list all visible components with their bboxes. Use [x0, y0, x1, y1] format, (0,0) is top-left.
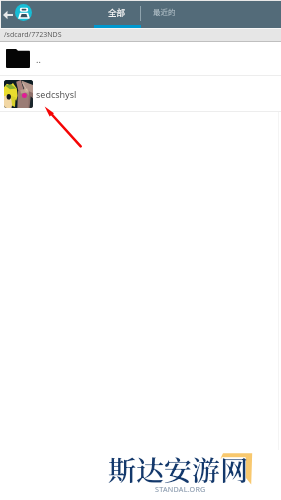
button[interactable]: 最近的 — [141, 1, 188, 26]
button[interactable]: App icon — [15, 4, 32, 21]
staticText: STANDAL.ORG — [155, 484, 206, 494]
button[interactable]: sedcshysl — [0, 76, 281, 111]
staticText: 全部 — [108, 6, 126, 18]
button[interactable]: .. — [0, 42, 281, 75]
button[interactable]: Back — [0, 1, 16, 28]
staticText: 最近的 — [153, 6, 176, 17]
staticText: /sdcard/7723NDS — [4, 30, 62, 40]
staticText: 斯达安游网 — [108, 449, 249, 489]
button[interactable]: 全部 — [93, 1, 140, 26]
staticText: sedcshysl — [36, 88, 77, 100]
staticText: .. — [36, 53, 41, 65]
